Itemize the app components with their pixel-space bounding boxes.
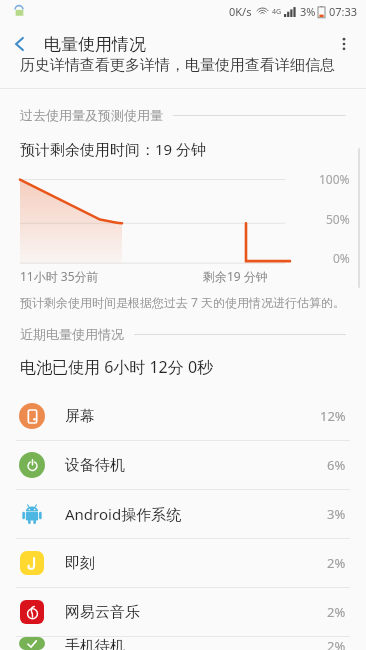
button[interactable]: Android操作系统	[0, 490, 366, 538]
staticText: 100%	[319, 171, 350, 187]
button[interactable]: 屏幕	[0, 392, 366, 440]
staticText: 3%	[327, 505, 346, 523]
staticText: 电量使用情况	[44, 34, 146, 55]
button[interactable]: 历史详情查看更多详情，电量使用查看详细信息	[0, 66, 366, 88]
staticText: 网易云音乐	[65, 603, 140, 622]
staticText: 0%	[333, 250, 350, 266]
staticText: 07:33	[329, 4, 358, 19]
staticText: 0K/s	[229, 4, 252, 19]
button[interactable]: 设备待机	[0, 441, 366, 489]
staticText: Android操作系统	[65, 504, 182, 524]
staticText: 屏幕	[65, 407, 95, 426]
staticText: 2%	[327, 554, 346, 572]
staticText: 4G	[272, 7, 282, 17]
staticText: 3%	[300, 4, 316, 19]
staticText: 预计剩余使用时间是根据您过去 7 天的使用情况进行估算的。	[20, 294, 346, 310]
staticText: 11小时 35分前	[20, 268, 99, 284]
staticText: 2%	[327, 603, 346, 621]
staticText: 电池已使用 6小时 12分 0秒	[20, 356, 214, 378]
staticText: 12%	[320, 407, 346, 425]
staticText: 6%	[327, 456, 346, 474]
button[interactable]: Back	[0, 24, 40, 64]
button[interactable]: 即刻	[0, 539, 366, 587]
staticText: 50%	[326, 211, 350, 227]
staticText: 剩余19 分钟	[203, 268, 268, 284]
staticText: 手机待机	[65, 637, 125, 650]
staticText: 近期电量使用情况	[20, 326, 124, 342]
button[interactable]: More options	[322, 22, 366, 66]
staticText: 历史详情查看更多详情，电量使用查看详细信息	[20, 56, 335, 75]
staticText: 即刻	[65, 554, 95, 573]
staticText: 2%	[327, 637, 346, 650]
staticText: 预计剩余使用时间：19 分钟	[20, 139, 207, 159]
staticText: 过去使用量及预测使用量	[20, 107, 163, 123]
staticText: 设备待机	[65, 456, 125, 475]
button[interactable]: 网易云音乐	[0, 588, 366, 636]
button[interactable]: 手机待机	[0, 637, 366, 650]
